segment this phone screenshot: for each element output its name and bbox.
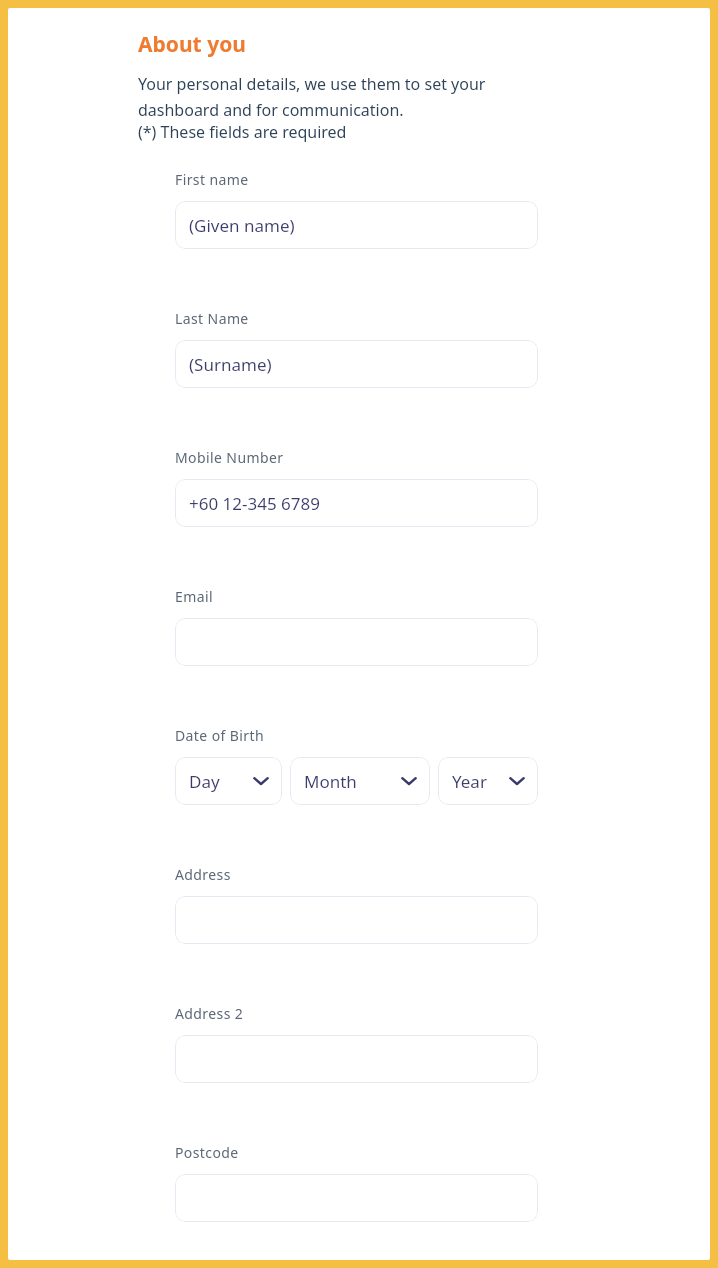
staticText: Day: [189, 770, 220, 793]
button[interactable]: (Surname): [175, 340, 538, 388]
staticText: First name: [175, 170, 249, 189]
staticText: Email: [175, 587, 213, 606]
button[interactable]: [175, 618, 538, 666]
staticText: Address 2: [175, 1004, 244, 1023]
button[interactable]: (Given name): [175, 201, 538, 249]
button[interactable]: +60 12-345 6789: [175, 479, 538, 527]
staticText: (*) These fields are required: [138, 121, 347, 143]
button[interactable]: Day: [175, 757, 282, 805]
other: Open Month options: [401, 776, 417, 786]
staticText: (Surname): [189, 353, 272, 376]
staticText: (Given name): [189, 214, 295, 237]
button[interactable]: [175, 1174, 538, 1222]
button[interactable]: [175, 896, 538, 944]
staticText: Mobile Number: [175, 448, 284, 467]
staticText: Your personal details, we use them to se…: [138, 73, 548, 121]
staticText: Last Name: [175, 309, 249, 328]
staticText: About you: [138, 30, 246, 59]
staticText: Month: [304, 770, 357, 793]
other: Open Day options: [253, 776, 269, 786]
staticText: Postcode: [175, 1143, 239, 1162]
staticText: Date of Birth: [175, 726, 264, 745]
button[interactable]: Year: [438, 757, 538, 805]
button[interactable]: [175, 1035, 538, 1083]
staticText: Year: [452, 770, 487, 793]
button[interactable]: Month: [290, 757, 430, 805]
other: Open Year options: [509, 776, 525, 786]
staticText: +60 12-345 6789: [189, 492, 321, 515]
staticText: Address: [175, 865, 231, 884]
